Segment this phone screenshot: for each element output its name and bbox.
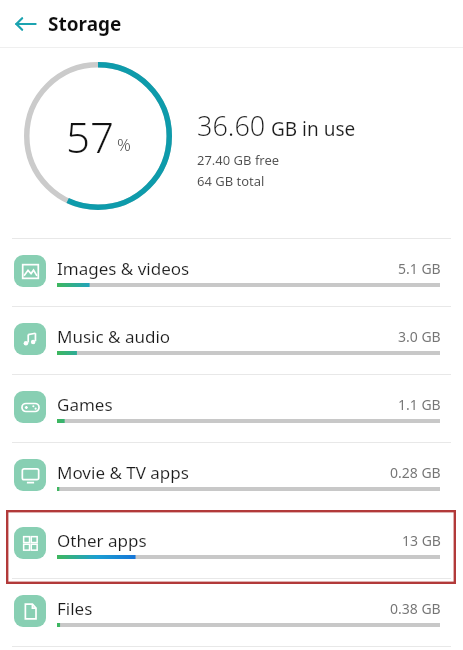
staticText: Storage	[48, 11, 122, 37]
staticText: 5.1 GB	[398, 259, 441, 278]
staticText: Music & audio	[57, 325, 171, 348]
staticText: 3.0 GB	[398, 327, 441, 346]
button[interactable]: Music & audio	[0, 307, 463, 374]
button[interactable]: Movie & TV apps	[0, 443, 463, 510]
staticText: Games	[57, 393, 113, 416]
staticText: Other apps	[57, 529, 147, 552]
staticText: 1.1 GB	[398, 395, 441, 414]
staticText: 57	[66, 108, 114, 165]
staticText: %	[117, 133, 131, 156]
staticText: 13 GB	[402, 531, 441, 550]
button[interactable]: Other apps	[0, 511, 463, 578]
staticText: Movie & TV apps	[57, 461, 189, 484]
staticText: GB in use	[271, 116, 356, 142]
button[interactable]: Images & videos	[0, 239, 463, 306]
staticText: 36.60	[197, 107, 266, 144]
staticText: 0.28 GB	[390, 463, 441, 482]
button[interactable]: Files	[0, 579, 463, 646]
staticText: Files	[57, 597, 93, 620]
button[interactable]: Back	[6, 4, 46, 44]
staticText: 0.38 GB	[390, 599, 441, 618]
staticText: 64 GB total	[197, 172, 265, 190]
staticText: 27.40 GB free	[197, 151, 280, 169]
staticText: Images & videos	[57, 257, 190, 280]
button[interactable]: Games	[0, 375, 463, 442]
